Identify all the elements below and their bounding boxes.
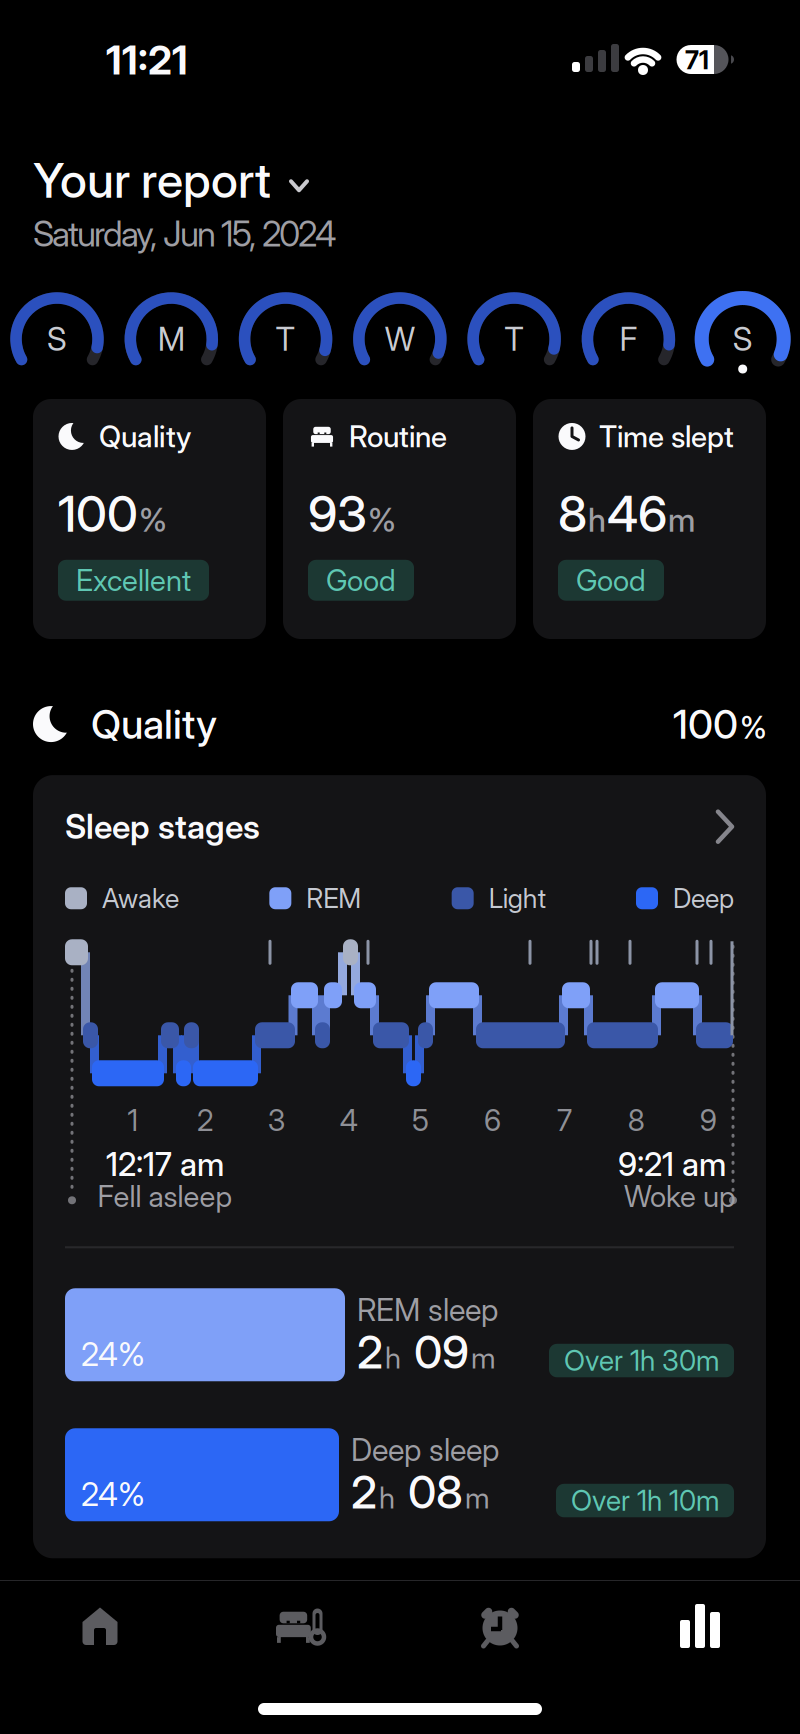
staticText: 9:21 am xyxy=(618,1147,726,1181)
staticText: REM xyxy=(306,884,361,912)
staticText: 09 xyxy=(403,1328,469,1376)
staticText: 100 xyxy=(673,703,738,745)
staticText: Saturday, Jun 15, 2024 xyxy=(33,215,336,252)
staticText: Over 1h 10m xyxy=(571,1486,719,1515)
staticText: 71 xyxy=(685,47,709,73)
staticText: % xyxy=(368,503,396,537)
staticText: 4 xyxy=(340,1105,358,1136)
staticText: Deep sleep xyxy=(351,1434,499,1466)
staticText: 46 xyxy=(607,488,667,540)
button[interactable]: Your report xyxy=(33,155,307,205)
staticText: 5 xyxy=(412,1105,429,1136)
button[interactable]: W xyxy=(343,284,457,394)
staticText: m xyxy=(668,503,695,537)
staticText: h xyxy=(385,1342,401,1373)
staticText: Excellent xyxy=(76,565,191,596)
staticText: W xyxy=(385,322,415,356)
button[interactable]: T xyxy=(229,284,343,394)
button[interactable]: T xyxy=(457,284,571,394)
staticText: M xyxy=(158,322,185,356)
staticText: Time slept xyxy=(599,421,734,452)
staticText: 8 xyxy=(628,1105,645,1136)
staticText: Light xyxy=(489,884,546,912)
staticText: Routine xyxy=(349,421,447,452)
staticText: 12:17 am xyxy=(106,1147,224,1181)
button[interactable]: Reports xyxy=(600,1581,800,1671)
staticText: m xyxy=(465,1482,490,1513)
staticText: 2 xyxy=(357,1328,383,1376)
button[interactable]: M xyxy=(114,284,229,394)
staticText: 7 xyxy=(557,1105,572,1136)
staticText: Over 1h 30m xyxy=(564,1346,719,1375)
staticText: h xyxy=(379,1482,395,1513)
staticText: 24% xyxy=(81,1477,145,1511)
button[interactable]: F xyxy=(571,284,686,394)
staticText: Good xyxy=(576,565,646,596)
staticText: Quality xyxy=(91,703,217,745)
staticText: 93 xyxy=(308,488,367,540)
staticText: Quality xyxy=(99,421,191,452)
staticText: 9 xyxy=(700,1105,717,1136)
staticText: 2 xyxy=(197,1105,213,1136)
staticText: S xyxy=(733,322,753,356)
staticText: 100 xyxy=(58,488,138,540)
staticText: Sleep stages xyxy=(65,809,260,844)
staticText: Good xyxy=(326,565,396,596)
staticText: Fell asleep xyxy=(97,1181,232,1212)
staticText: Your report xyxy=(33,155,271,205)
staticText: Woke up xyxy=(624,1181,736,1212)
staticText: % xyxy=(139,503,167,537)
staticText: S xyxy=(47,322,67,356)
staticText: Awake xyxy=(102,884,179,912)
button[interactable]: S xyxy=(0,284,114,394)
button[interactable]: Sleep xyxy=(200,1581,400,1671)
button[interactable]: S xyxy=(686,284,800,394)
staticText: % xyxy=(740,711,767,744)
staticText: F xyxy=(619,322,637,356)
staticText: 3 xyxy=(268,1105,286,1136)
button[interactable]: Home xyxy=(0,1581,200,1671)
staticText: 24% xyxy=(81,1337,145,1371)
staticText: REM sleep xyxy=(357,1294,498,1326)
button[interactable]: Alarms xyxy=(400,1581,600,1671)
staticText: h xyxy=(588,503,606,537)
staticText: Deep xyxy=(673,884,734,912)
staticText: 11:21 xyxy=(106,39,188,81)
staticText: T xyxy=(504,322,524,356)
button[interactable]: Sleep stages xyxy=(65,775,734,844)
staticText: T xyxy=(276,322,296,356)
staticText: 2 xyxy=(351,1468,377,1516)
staticText: 08 xyxy=(397,1468,463,1516)
staticText: 1 xyxy=(127,1105,138,1136)
staticText: m xyxy=(471,1342,496,1373)
staticText: 8 xyxy=(558,488,587,540)
staticText: 6 xyxy=(484,1105,501,1136)
